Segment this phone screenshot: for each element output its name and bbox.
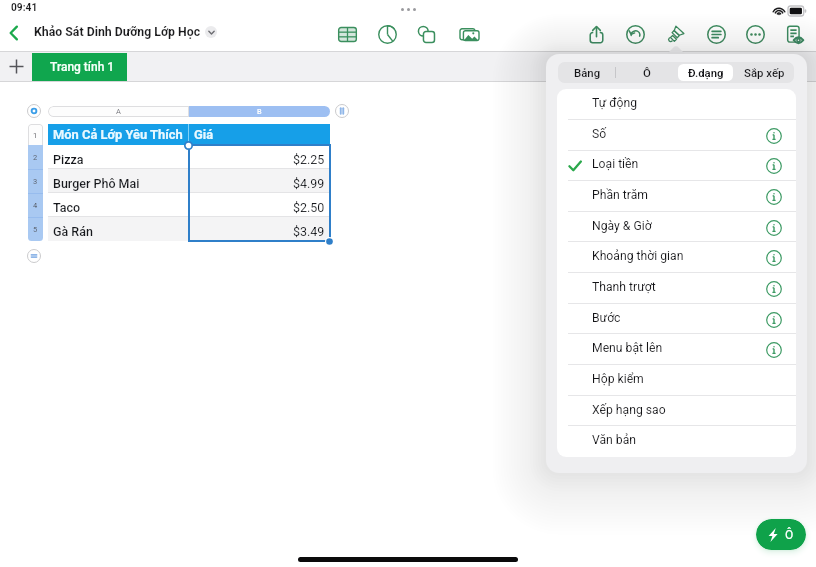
button[interactable]: More info [765,188,783,206]
button[interactable]: B [189,106,330,117]
button[interactable]: Ngày & Giờ [557,212,796,243]
button[interactable]: Document options [779,19,809,49]
staticText: Phần trăm [592,188,648,202]
button[interactable] [48,169,330,193]
staticText: Menu bật lên [592,341,663,355]
button[interactable]: Insert table [332,19,362,49]
button[interactable]: Phần trăm [557,181,796,212]
staticText: Taco [53,200,81,215]
button[interactable]: More info [765,341,783,359]
staticText: Gà Rán [53,224,93,239]
button[interactable]: Bước [557,304,796,335]
button[interactable]: Trang tính 1 [32,53,127,81]
button[interactable]: 2 [28,145,43,169]
staticText: Văn bản [592,433,637,447]
button[interactable] [48,145,330,169]
button[interactable]: Insert media [454,19,484,49]
button[interactable]: 3 [28,169,43,193]
button[interactable]: More info [765,249,783,267]
button[interactable]: Loại tiền [557,150,796,181]
staticText: $3.49 [293,224,325,239]
staticText: Giá [194,127,214,142]
button[interactable]: Đ.dạng [678,64,733,81]
button[interactable]: Tự động [557,89,796,120]
button[interactable]: Ô [619,64,674,81]
staticText: Hộp kiểm [592,372,644,386]
button[interactable]: Insert shape [411,19,441,49]
staticText: Món Cả Lớp Yêu Thích [53,127,183,142]
button[interactable]: 5 [28,217,43,241]
staticText: Khảo Sát Dinh Dưỡng Lớp Học [34,25,201,39]
button[interactable] [48,217,330,241]
button[interactable]: A [48,106,189,117]
button[interactable]: More [740,19,770,49]
button[interactable]: Quick formulas [756,519,806,550]
button[interactable] [48,193,330,217]
staticText: Sắp xếp [744,66,785,79]
button[interactable]: Resize columns [335,104,349,118]
staticText: $2.25 [293,152,325,167]
staticText: Bảng [574,66,601,79]
staticText: Xếp hạng sao [592,403,666,417]
staticText: Trang tính 1 [50,60,115,74]
button[interactable]: Menu bật lên [557,334,796,365]
button[interactable]: More info [765,127,783,145]
button[interactable]: Format [660,19,690,49]
staticText: Số [592,127,607,141]
button[interactable]: Số [557,120,796,151]
button[interactable]: More info [765,219,783,237]
staticText: 5 [33,225,38,234]
button[interactable]: Insert [701,19,731,49]
staticText: Ô [785,528,794,542]
staticText: Ngày & Giờ [592,219,652,233]
button[interactable]: Share [581,19,611,49]
staticText: 1 [33,131,38,140]
button[interactable]: Khảo Sát Dinh Dưỡng Lớp Học [34,25,217,39]
staticText: Burger Phô Mai [53,176,140,191]
staticText: Đ.dạng [688,66,724,79]
staticText: B [257,107,262,116]
staticText: Thanh trượt [592,280,656,294]
button[interactable]: 4 [28,193,43,217]
button[interactable]: Back [0,19,28,47]
staticText: Bước [592,311,621,325]
staticText: $4.99 [293,176,325,191]
button[interactable]: Table options [27,249,41,263]
button[interactable]: Thanh trượt [557,273,796,304]
staticText: 3 [33,177,38,186]
button[interactable]: Bảng [560,64,615,81]
staticText: 2 [33,153,38,162]
button[interactable]: Xếp hạng sao [557,396,796,427]
staticText: Pizza [53,152,84,167]
button[interactable]: More info [765,157,783,175]
button[interactable]: Văn bản [557,426,796,457]
staticText: $2.50 [293,200,325,215]
staticText: Ô [643,66,651,79]
button[interactable]: Hộp kiểm [557,365,796,396]
button[interactable]: Undo [620,19,650,49]
staticText: A [116,107,121,116]
button[interactable]: Khoảng thời gian [557,242,796,273]
button[interactable]: 1 [28,124,43,146]
staticText: 4 [33,201,38,210]
staticText: Khoảng thời gian [592,249,684,263]
button[interactable]: More info [765,280,783,298]
button[interactable]: Add sheet [0,51,32,82]
button[interactable]: More info [765,311,783,329]
staticText: 09:41 [11,2,38,14]
staticText: Loại tiền [592,157,639,171]
button[interactable]: Insert chart [372,19,402,49]
staticText: Tự động [592,96,638,110]
button[interactable]: Sắp xếp [737,64,792,81]
